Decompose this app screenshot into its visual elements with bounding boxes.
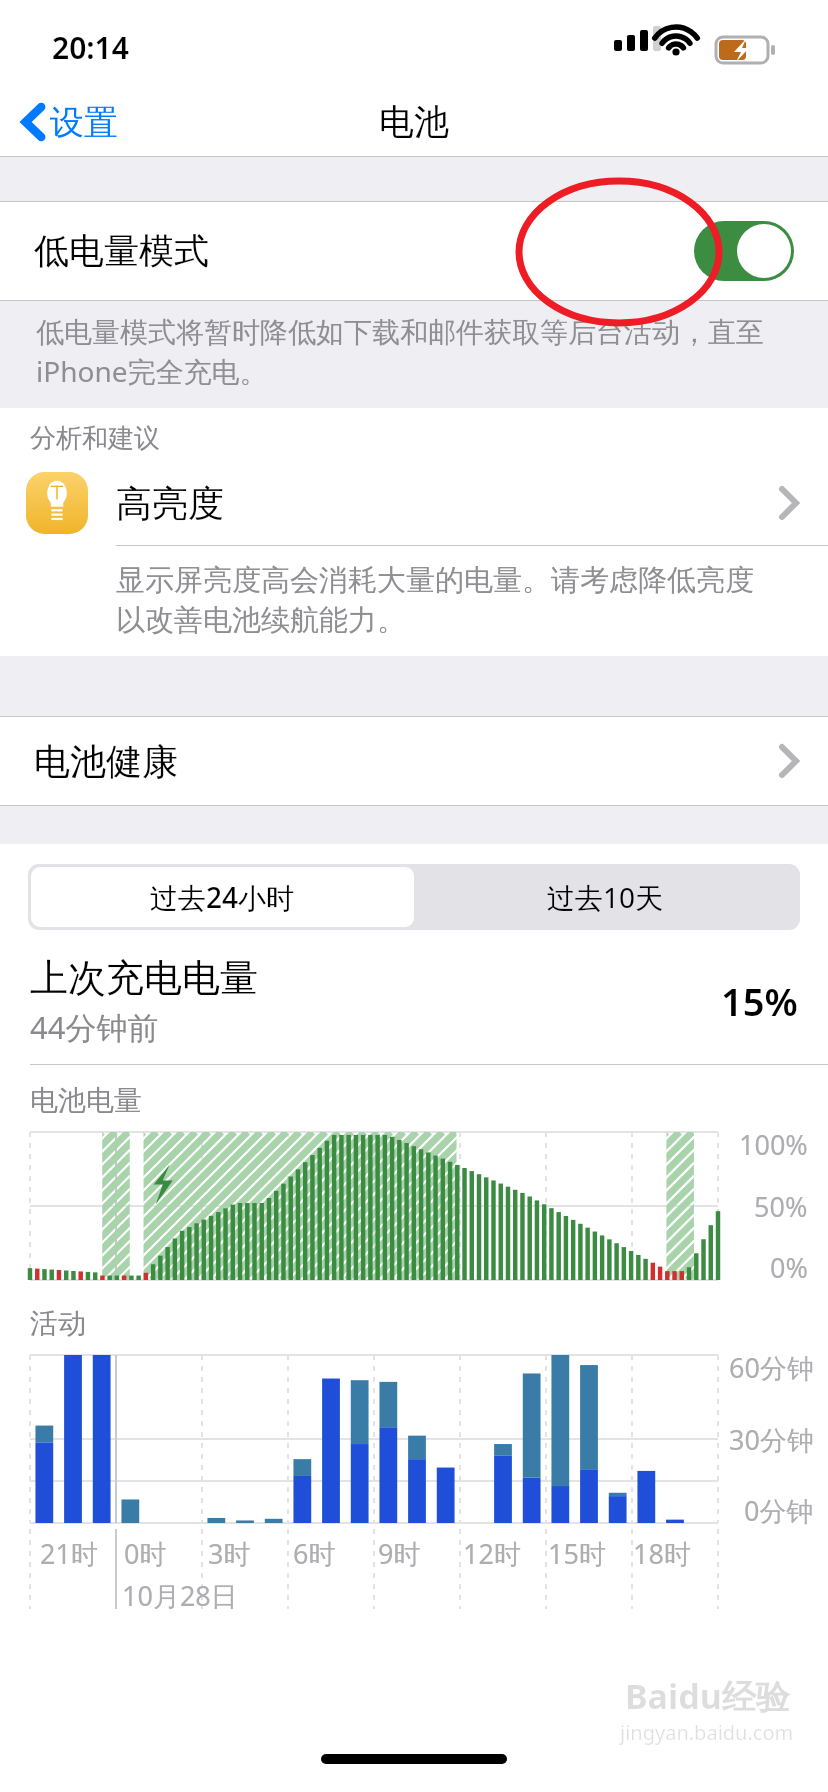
staticText: 活动 (30, 1306, 86, 1341)
staticText: 44分钟前 (30, 1006, 159, 1048)
staticText: 过去24小时 (150, 878, 295, 916)
staticText: 6时 (293, 1535, 336, 1572)
staticText: 上次充电电量 (30, 954, 258, 1002)
staticText: 12时 (463, 1535, 521, 1572)
staticText: 18时 (633, 1535, 691, 1572)
staticText: 15时 (548, 1535, 606, 1572)
button[interactable]: 过去10天 (414, 867, 797, 927)
staticText: Baidu经验 (625, 1673, 790, 1719)
staticText: 分析和建议 (30, 422, 160, 455)
staticText: 30分钟 (729, 1421, 814, 1458)
staticText: 15% (721, 975, 798, 1027)
staticText: 21时 (40, 1535, 98, 1572)
staticText: 20:14 (52, 27, 129, 68)
staticText: 3时 (208, 1535, 251, 1572)
staticText: 过去10天 (547, 878, 664, 916)
button[interactable]: 电池健康 (0, 717, 828, 805)
staticText: 高亮度 (116, 481, 224, 526)
staticText: 电池 (379, 100, 449, 144)
staticText: 0分钟 (744, 1492, 814, 1529)
staticText: jingyan.baidu.com (620, 1719, 794, 1746)
staticText: 50% (754, 1188, 808, 1225)
staticText: 设置 (50, 101, 118, 144)
staticText: 低电量模式 (34, 229, 209, 273)
staticText: 0% (770, 1249, 808, 1286)
staticText: 100% (739, 1126, 808, 1163)
staticText: 电池电量 (30, 1083, 142, 1118)
staticText: 显示屏亮度高会消耗大量的电量。请考虑降低亮度 以改善电池续航能力。 (116, 562, 754, 638)
button[interactable]: 高亮度 (0, 461, 828, 545)
button[interactable]: Low Power Mode toggle (694, 221, 794, 281)
staticText: 60分钟 (729, 1349, 814, 1386)
button[interactable]: 低电量模式 (0, 202, 828, 300)
staticText: 0时 (124, 1535, 167, 1572)
staticText: 10月28日 (122, 1577, 238, 1609)
staticText: 9时 (378, 1535, 421, 1572)
staticText: 电池健康 (34, 739, 178, 784)
button[interactable]: 过去24小时 (31, 867, 414, 927)
staticText: 低电量模式将暂时降低如下载和邮件获取等后台活动，直至 iPhone完全充电。 (36, 315, 764, 390)
button[interactable]: 设置 (0, 88, 132, 156)
